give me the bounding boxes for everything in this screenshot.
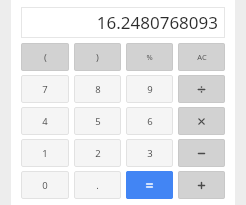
button[interactable]: 7 xyxy=(21,75,69,103)
button[interactable]: Equals xyxy=(126,171,173,199)
staticText: 1 xyxy=(42,147,48,160)
staticText: 3 xyxy=(147,147,153,160)
button[interactable]: . xyxy=(74,171,121,199)
button[interactable]: Add xyxy=(178,171,225,199)
staticText: 7 xyxy=(42,83,48,96)
staticText: 0 xyxy=(42,179,48,192)
button[interactable]: 6 xyxy=(126,107,173,135)
staticText: 6 xyxy=(147,115,153,128)
button[interactable]: % xyxy=(126,43,173,71)
staticText: 5 xyxy=(95,115,101,128)
button[interactable]: 4 xyxy=(21,107,69,135)
button[interactable]: 9 xyxy=(126,75,173,103)
button[interactable]: 1 xyxy=(21,139,69,167)
button[interactable]: ( xyxy=(21,43,69,71)
staticText: ) xyxy=(96,51,99,64)
button[interactable]: Subtract xyxy=(178,139,225,167)
button[interactable]: 0 xyxy=(21,171,69,199)
staticText: ( xyxy=(44,51,47,64)
button[interactable]: Divide xyxy=(178,75,225,103)
staticText: AC xyxy=(197,52,207,62)
button[interactable]: AC xyxy=(178,43,225,71)
button[interactable]: Multiply xyxy=(178,107,225,135)
staticText: 2 xyxy=(95,147,101,160)
staticText: 4 xyxy=(42,115,48,128)
staticText: . xyxy=(96,179,99,192)
button[interactable]: 8 xyxy=(74,75,121,103)
staticText: 16.2480768093 xyxy=(96,11,218,34)
button[interactable]: ) xyxy=(74,43,121,71)
staticText: % xyxy=(146,52,153,62)
button[interactable]: 5 xyxy=(74,107,121,135)
button[interactable]: 2 xyxy=(74,139,121,167)
button[interactable]: 3 xyxy=(126,139,173,167)
staticText: 8 xyxy=(95,83,101,96)
staticText: 9 xyxy=(147,83,153,96)
